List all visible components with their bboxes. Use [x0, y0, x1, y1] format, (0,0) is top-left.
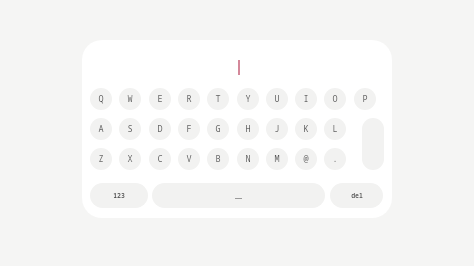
button[interactable]: del	[330, 183, 383, 208]
button[interactable]: B	[207, 148, 229, 170]
button[interactable]: X	[119, 148, 141, 170]
staticText: H	[245, 123, 251, 135]
button[interactable]: H	[237, 118, 259, 140]
staticText: O	[332, 93, 338, 105]
button[interactable]: L	[324, 118, 346, 140]
staticText: T	[215, 93, 221, 105]
staticText: Y	[245, 93, 251, 105]
staticText: C	[157, 153, 163, 165]
button[interactable]: G	[207, 118, 229, 140]
staticText: @	[303, 153, 309, 165]
button[interactable]: F	[178, 118, 200, 140]
staticText: B	[215, 153, 221, 165]
button[interactable]: J	[266, 118, 288, 140]
button[interactable]: Z	[90, 148, 112, 170]
button[interactable]: 123	[90, 183, 148, 208]
button[interactable]: Q	[90, 88, 112, 110]
button[interactable]: U	[266, 88, 288, 110]
staticText: N	[245, 153, 251, 165]
button[interactable]: Y	[237, 88, 259, 110]
staticText: Z	[98, 153, 104, 165]
button[interactable]: V	[178, 148, 200, 170]
button[interactable]: D	[149, 118, 171, 140]
staticText: 123	[113, 191, 125, 200]
staticText: .	[332, 153, 338, 165]
staticText: J	[274, 123, 280, 135]
button[interactable]: @	[295, 148, 317, 170]
staticText: S	[127, 123, 133, 135]
button[interactable]: N	[237, 148, 259, 170]
staticText: del	[351, 191, 363, 200]
staticText: F	[186, 123, 192, 135]
staticText: G	[215, 123, 221, 135]
button[interactable]: .	[324, 148, 346, 170]
button[interactable]: R	[178, 88, 200, 110]
button[interactable]: O	[324, 88, 346, 110]
staticText: K	[303, 123, 309, 135]
button[interactable]: Enter	[362, 118, 384, 170]
button[interactable]: W	[119, 88, 141, 110]
staticText: P	[362, 93, 368, 105]
staticText: V	[186, 153, 192, 165]
staticText: M	[274, 153, 280, 165]
button[interactable]: Space	[152, 183, 325, 208]
button[interactable]: A	[90, 118, 112, 140]
staticText: A	[98, 123, 104, 135]
button[interactable]: E	[149, 88, 171, 110]
button[interactable]: T	[207, 88, 229, 110]
button[interactable]: S	[119, 118, 141, 140]
staticText: W	[127, 93, 133, 105]
button[interactable]: C	[149, 148, 171, 170]
button[interactable]: K	[295, 118, 317, 140]
staticText: Q	[98, 93, 104, 105]
staticText: D	[157, 123, 163, 135]
button[interactable]: I	[295, 88, 317, 110]
staticText: X	[127, 153, 133, 165]
button[interactable]: M	[266, 148, 288, 170]
staticText: L	[332, 123, 338, 135]
staticText: R	[186, 93, 192, 105]
staticText: I	[303, 93, 309, 105]
button[interactable]: P	[354, 88, 376, 110]
staticText: E	[157, 93, 163, 105]
staticText: U	[274, 93, 280, 105]
